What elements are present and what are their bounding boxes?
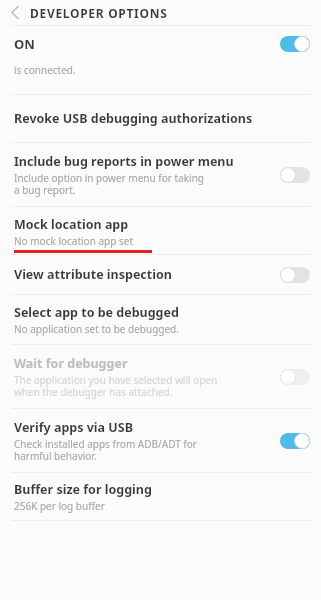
staticText: No application set to be debugged. <box>14 322 179 336</box>
staticText: Mock location app <box>14 216 129 233</box>
button[interactable]: Select app to be debugged <box>0 295 321 344</box>
button[interactable]: Include bug reports in power menu <box>0 143 321 206</box>
staticText: No mock location app set <box>14 234 133 248</box>
button[interactable] <box>273 362 317 392</box>
staticText: View attribute inspection <box>14 266 172 283</box>
staticText: DEVELOPER OPTIONS <box>30 5 168 21</box>
staticText: Select app to be debugged <box>14 304 179 321</box>
staticText: Wait for debugger <box>14 355 128 372</box>
button[interactable]: Buffer size for logging <box>0 473 321 520</box>
staticText: Buffer size for logging <box>14 481 152 498</box>
staticText: 256K per log buffer <box>14 499 105 513</box>
button[interactable] <box>273 260 317 290</box>
staticText: The application you have selected will o… <box>14 373 218 399</box>
staticText: Verify apps via USB <box>14 419 133 436</box>
button[interactable]: Back <box>0 0 30 25</box>
staticText: Include bug reports in power menu <box>14 153 234 170</box>
button[interactable]: is connected. <box>0 62 321 94</box>
button[interactable]: Revoke USB debugging authorizations <box>0 95 321 142</box>
button[interactable] <box>273 160 317 190</box>
staticText: Revoke USB debugging authorizations <box>14 110 253 127</box>
button[interactable]: View attribute inspection <box>0 255 321 294</box>
button[interactable] <box>273 426 317 456</box>
button[interactable]: Wait for debugger <box>0 345 321 408</box>
staticText: ON <box>14 35 35 53</box>
button[interactable]: ON <box>0 26 321 62</box>
staticText: Check installed apps from ADB/ADT for ha… <box>14 437 197 463</box>
button[interactable]: Verify apps via USB <box>0 409 321 472</box>
button[interactable] <box>273 29 317 59</box>
staticText: is connected. <box>14 63 76 77</box>
button[interactable]: Mock location app <box>0 207 321 254</box>
staticText: Include option in power menu for taking … <box>14 171 204 197</box>
